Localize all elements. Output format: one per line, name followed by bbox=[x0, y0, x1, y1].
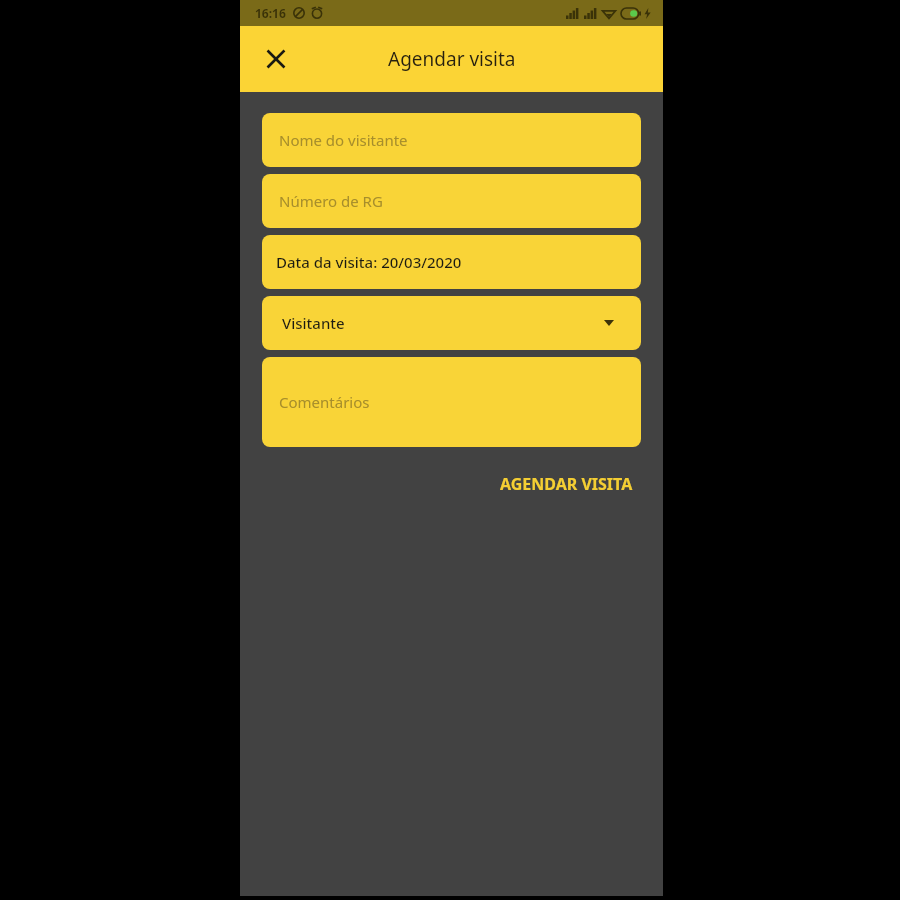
staticText: Número de RG bbox=[279, 191, 383, 211]
button[interactable]: Número de RG bbox=[262, 174, 641, 228]
staticText: 16:16 bbox=[255, 5, 286, 21]
staticText: Visitante bbox=[282, 313, 345, 333]
button[interactable]: AGENDAR VISITA bbox=[492, 465, 641, 503]
button[interactable]: Fechar bbox=[254, 37, 298, 81]
staticText: AGENDAR VISITA bbox=[500, 473, 633, 495]
button[interactable]: Nome do visitante bbox=[262, 113, 641, 167]
button[interactable]: Data da visita: 20/03/2020 bbox=[262, 235, 641, 289]
button[interactable]: Visitante bbox=[262, 296, 641, 350]
button[interactable]: Comentários bbox=[262, 357, 641, 447]
staticText: Agendar visita bbox=[388, 46, 516, 72]
staticText: Comentários bbox=[279, 392, 370, 412]
staticText: Data da visita: 20/03/2020 bbox=[276, 252, 462, 272]
staticText: Nome do visitante bbox=[279, 130, 408, 150]
